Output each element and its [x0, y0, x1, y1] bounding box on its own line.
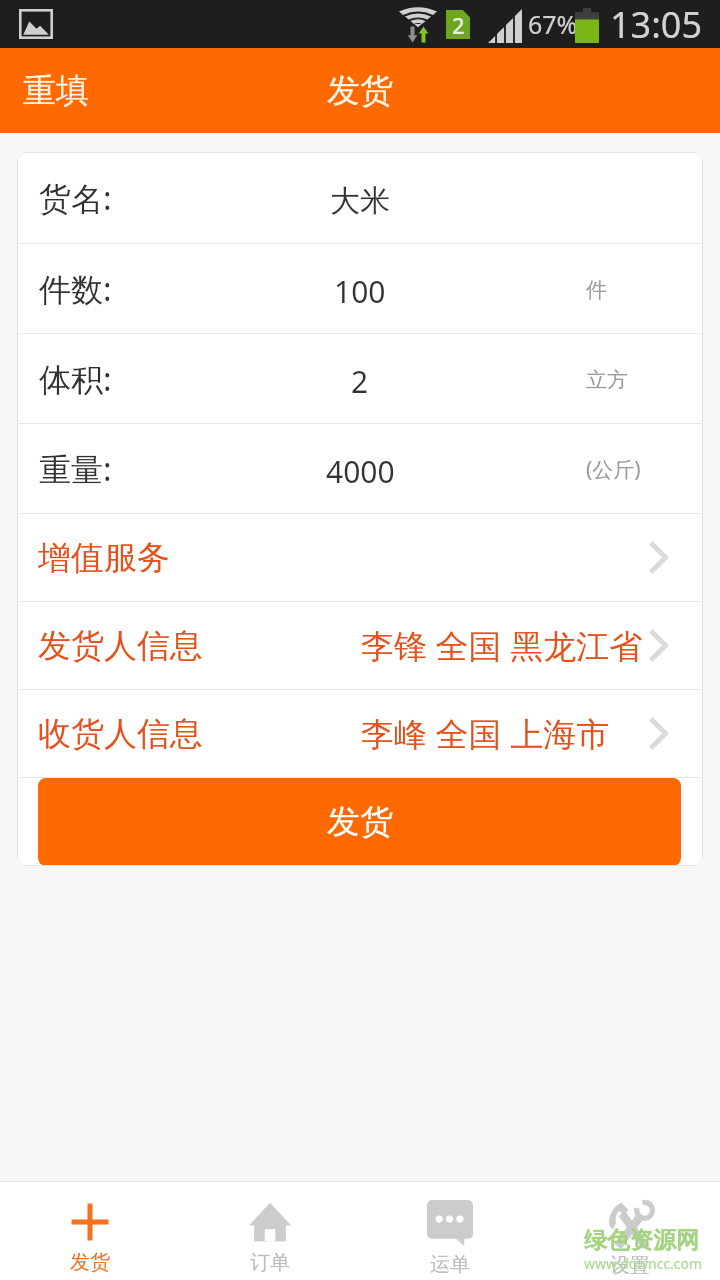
- staticText: 体积:: [39, 357, 112, 401]
- button[interactable]: 运单: [360, 1182, 540, 1280]
- staticText: 大米: [330, 182, 390, 220]
- staticText: 增值服务: [38, 537, 170, 579]
- staticText: 100: [334, 271, 386, 312]
- staticText: 发货: [327, 70, 393, 112]
- staticText: 重填: [23, 70, 89, 112]
- staticText: 收货人信息: [38, 713, 203, 755]
- button[interactable]: 重填: [0, 58, 112, 124]
- staticText: 67%: [528, 7, 578, 41]
- staticText: 件: [586, 277, 607, 303]
- staticText: 订单: [250, 1250, 290, 1275]
- staticText: 绿色资源网: [584, 1226, 699, 1255]
- staticText: 2: [351, 361, 369, 402]
- staticText: 2: [452, 10, 465, 39]
- staticText: 13:05: [610, 0, 703, 48]
- staticText: 4000: [326, 451, 395, 492]
- staticText: www.downcc.com: [584, 1254, 703, 1273]
- button[interactable]: 订单: [180, 1182, 360, 1280]
- staticText: 立方: [586, 367, 628, 393]
- staticText: 重量:: [39, 447, 112, 491]
- staticText: 发货: [70, 1250, 110, 1275]
- staticText: 发货人信息: [38, 625, 203, 667]
- staticText: 运单: [430, 1252, 470, 1277]
- staticText: 设置: [610, 1253, 650, 1278]
- staticText: 发货: [327, 801, 393, 843]
- button[interactable]: 设置: [540, 1182, 720, 1280]
- staticText: 李峰 全国 上海市: [361, 711, 610, 756]
- button[interactable]: 发货: [0, 1182, 180, 1280]
- button[interactable]: 收货人信息: [17, 690, 703, 777]
- button[interactable]: 增值服务: [17, 514, 703, 601]
- button[interactable]: 发货: [38, 778, 681, 866]
- button[interactable]: 发货人信息: [17, 602, 703, 689]
- staticText: 李锋 全国 黑龙江省: [361, 623, 643, 668]
- staticText: (公斤): [586, 455, 641, 484]
- staticText: 件数:: [39, 267, 112, 311]
- staticText: 货名:: [39, 176, 112, 220]
